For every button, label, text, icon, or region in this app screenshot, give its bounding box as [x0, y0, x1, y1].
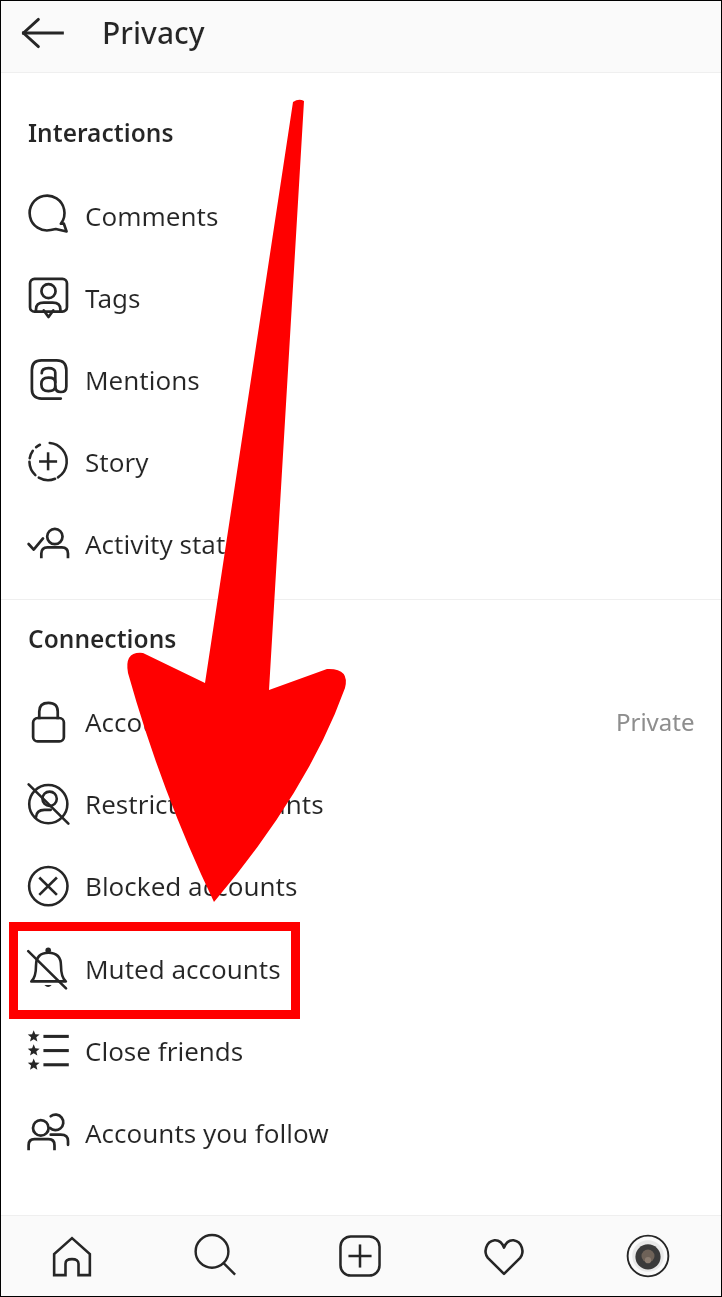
- staticText: Close friends: [85, 1033, 244, 1068]
- button[interactable]: Comments: [1, 174, 721, 256]
- button[interactable]: Story: [1, 420, 721, 502]
- button[interactable]: Profile: [612, 1215, 684, 1296]
- staticText: Mentions: [85, 362, 200, 397]
- staticText: Connections: [28, 622, 177, 655]
- button[interactable]: Restricted accounts: [1, 762, 721, 844]
- button[interactable]: Activity: [468, 1215, 540, 1296]
- button[interactable]: Account privacy: [1, 680, 721, 762]
- staticText: Blocked accounts: [85, 868, 298, 903]
- staticText: Activity status: [85, 526, 254, 561]
- staticText: Comments: [85, 198, 219, 233]
- staticText: Account privacy: [85, 704, 278, 739]
- staticText: Privacy: [102, 12, 205, 53]
- staticText: Story: [85, 444, 149, 479]
- staticText: Private: [616, 705, 695, 738]
- button[interactable]: Muted accounts: [1, 927, 721, 1009]
- button[interactable]: Search: [180, 1215, 252, 1296]
- staticText: Restricted accounts: [85, 786, 324, 821]
- staticText: Accounts you follow: [85, 1115, 329, 1150]
- staticText: Tags: [85, 280, 141, 315]
- button[interactable]: Home: [36, 1215, 108, 1296]
- button[interactable]: Mentions: [1, 338, 721, 420]
- button[interactable]: Back: [2, 0, 82, 69]
- button[interactable]: Create: [324, 1215, 396, 1296]
- button[interactable]: Tags: [1, 256, 721, 338]
- button[interactable]: Activity status: [1, 502, 721, 584]
- staticText: Interactions: [28, 116, 174, 149]
- button[interactable]: Accounts you follow: [1, 1091, 721, 1173]
- button[interactable]: Close friends: [1, 1009, 721, 1091]
- staticText: Muted accounts: [85, 951, 281, 986]
- button[interactable]: Blocked accounts: [1, 844, 721, 926]
